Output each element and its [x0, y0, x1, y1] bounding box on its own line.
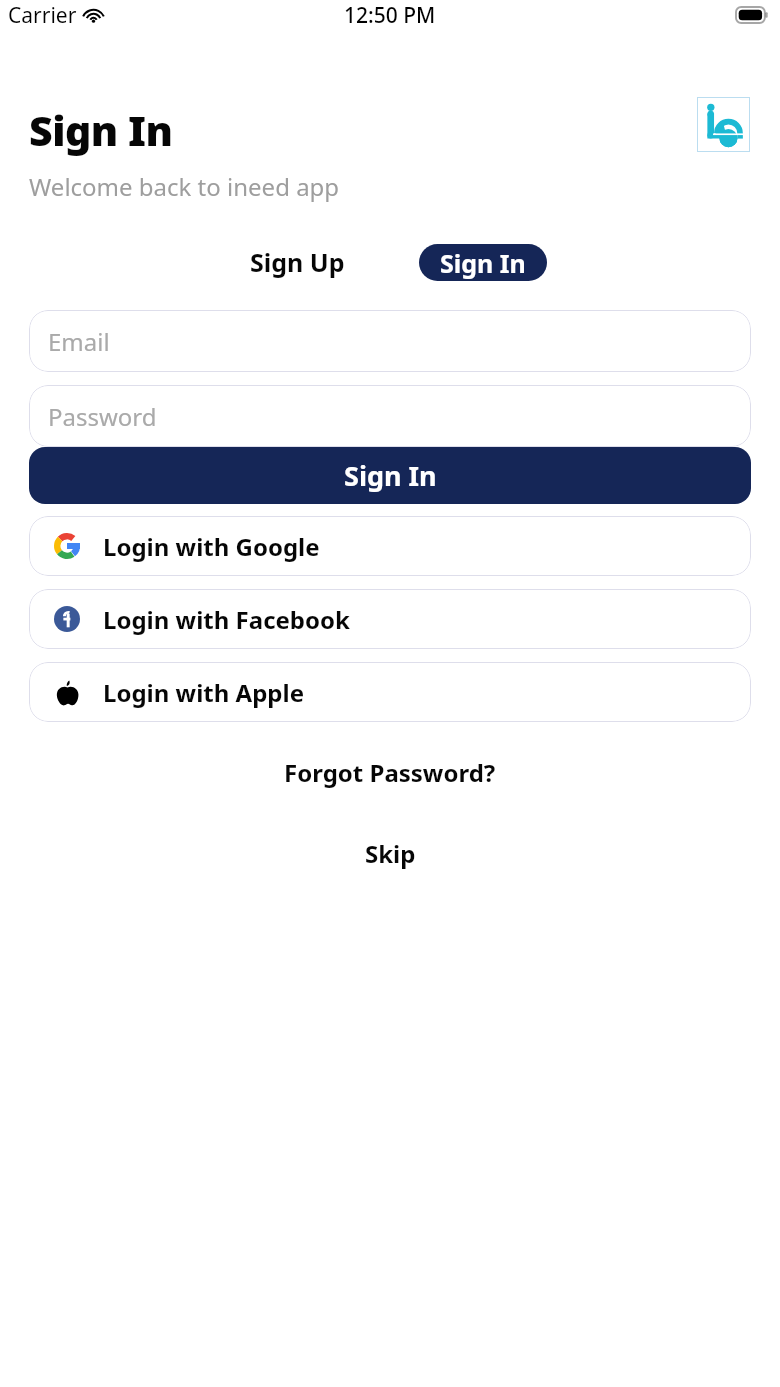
- staticText: 12:50 PM: [344, 1, 436, 30]
- button[interactable]: Sign In: [419, 244, 547, 281]
- staticText: Login with Apple: [103, 676, 304, 709]
- staticText: Login with Facebook: [103, 603, 350, 636]
- button[interactable]: Apple: [29, 662, 751, 722]
- button[interactable]: Google: [29, 516, 751, 576]
- staticText: Welcome back to ineed app: [29, 170, 340, 203]
- button[interactable]: Sign Up: [234, 235, 361, 289]
- staticText: Login with Google: [103, 530, 320, 563]
- staticText: Skip: [365, 837, 416, 870]
- staticText: Sign In: [344, 457, 437, 494]
- button[interactable]: Sign In: [29, 447, 751, 504]
- staticText: Forgot Password?: [284, 756, 496, 789]
- button[interactable]: Email: [29, 310, 751, 372]
- staticText: Email: [48, 325, 110, 358]
- other: Facebook: [54, 606, 80, 632]
- staticText: Carrier: [8, 1, 77, 30]
- button[interactable]: Facebook: [29, 589, 751, 649]
- other: Google: [54, 533, 80, 559]
- staticText: Sign Up: [250, 245, 345, 279]
- staticText: Sign In: [29, 102, 173, 158]
- staticText: Sign In: [440, 246, 526, 280]
- other: Apple: [54, 679, 81, 706]
- staticText: Password: [48, 400, 157, 433]
- button[interactable]: Password: [29, 385, 751, 447]
- button[interactable]: Skip: [351, 837, 430, 870]
- button[interactable]: Forgot Password?: [270, 750, 510, 795]
